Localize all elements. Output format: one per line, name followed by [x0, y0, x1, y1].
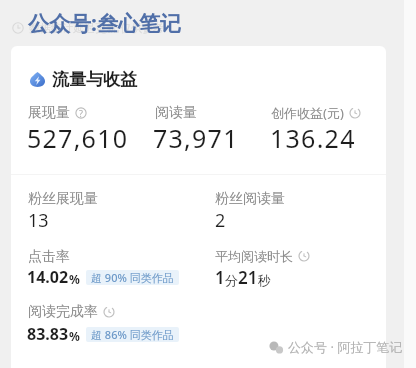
staticText: 点击率 — [28, 248, 70, 266]
button[interactable]: 流量与收益 — [30, 69, 137, 90]
staticText: 21 — [238, 266, 258, 289]
button[interactable]: 14.02 — [27, 266, 80, 288]
staticText: 136.24 — [270, 121, 356, 155]
staticText: 展现量 — [28, 104, 70, 122]
button[interactable]: 超 90% 同类作品 — [86, 270, 179, 285]
staticText: 分 — [225, 272, 238, 288]
staticText: 13 — [28, 208, 49, 233]
staticText: 数据统计延迟更新,仅供参考 — [29, 20, 164, 35]
staticText: % — [69, 328, 80, 344]
staticText: 527,610 — [27, 121, 129, 155]
button[interactable]: Refresh — [103, 306, 115, 318]
other: Update time — [12, 22, 24, 34]
staticText: 1 — [215, 266, 225, 289]
staticText: 14.02 — [27, 266, 69, 288]
staticText: 流量与收益 — [52, 69, 137, 90]
staticText: 创作收益(元) — [271, 104, 344, 122]
button[interactable]: More info — [75, 107, 87, 119]
staticText: 2 — [215, 208, 226, 233]
button[interactable]: 1 — [215, 266, 271, 289]
staticText: 公众号 · 阿拉丁笔记 — [288, 338, 403, 356]
staticText: 平均阅读时长 — [215, 248, 293, 264]
button[interactable]: Update time — [12, 20, 164, 35]
staticText: 73,971 — [153, 121, 239, 155]
staticText: 粉丝阅读量 — [215, 190, 285, 208]
staticText: 超 90% 同类作品 — [91, 270, 174, 285]
button[interactable]: 超 86% 同类作品 — [86, 327, 179, 342]
other: WeChat — [269, 340, 284, 355]
button[interactable]: WeChat — [269, 338, 403, 356]
staticText: 阅读完成率 — [28, 303, 98, 321]
staticText: 83.83 — [27, 323, 69, 345]
button[interactable]: 83.83 — [27, 323, 80, 345]
staticText: % — [69, 271, 80, 287]
button[interactable]: Refresh — [298, 250, 310, 262]
staticText: 阅读量 — [155, 104, 197, 122]
staticText: ? — [79, 107, 83, 119]
staticText: 超 86% 同类作品 — [91, 327, 174, 342]
staticText: 粉丝展现量 — [28, 190, 98, 208]
button[interactable]: Refresh — [349, 107, 361, 119]
staticText: 公众号:叁心笔记 — [28, 9, 181, 38]
staticText: 秒 — [258, 272, 271, 288]
